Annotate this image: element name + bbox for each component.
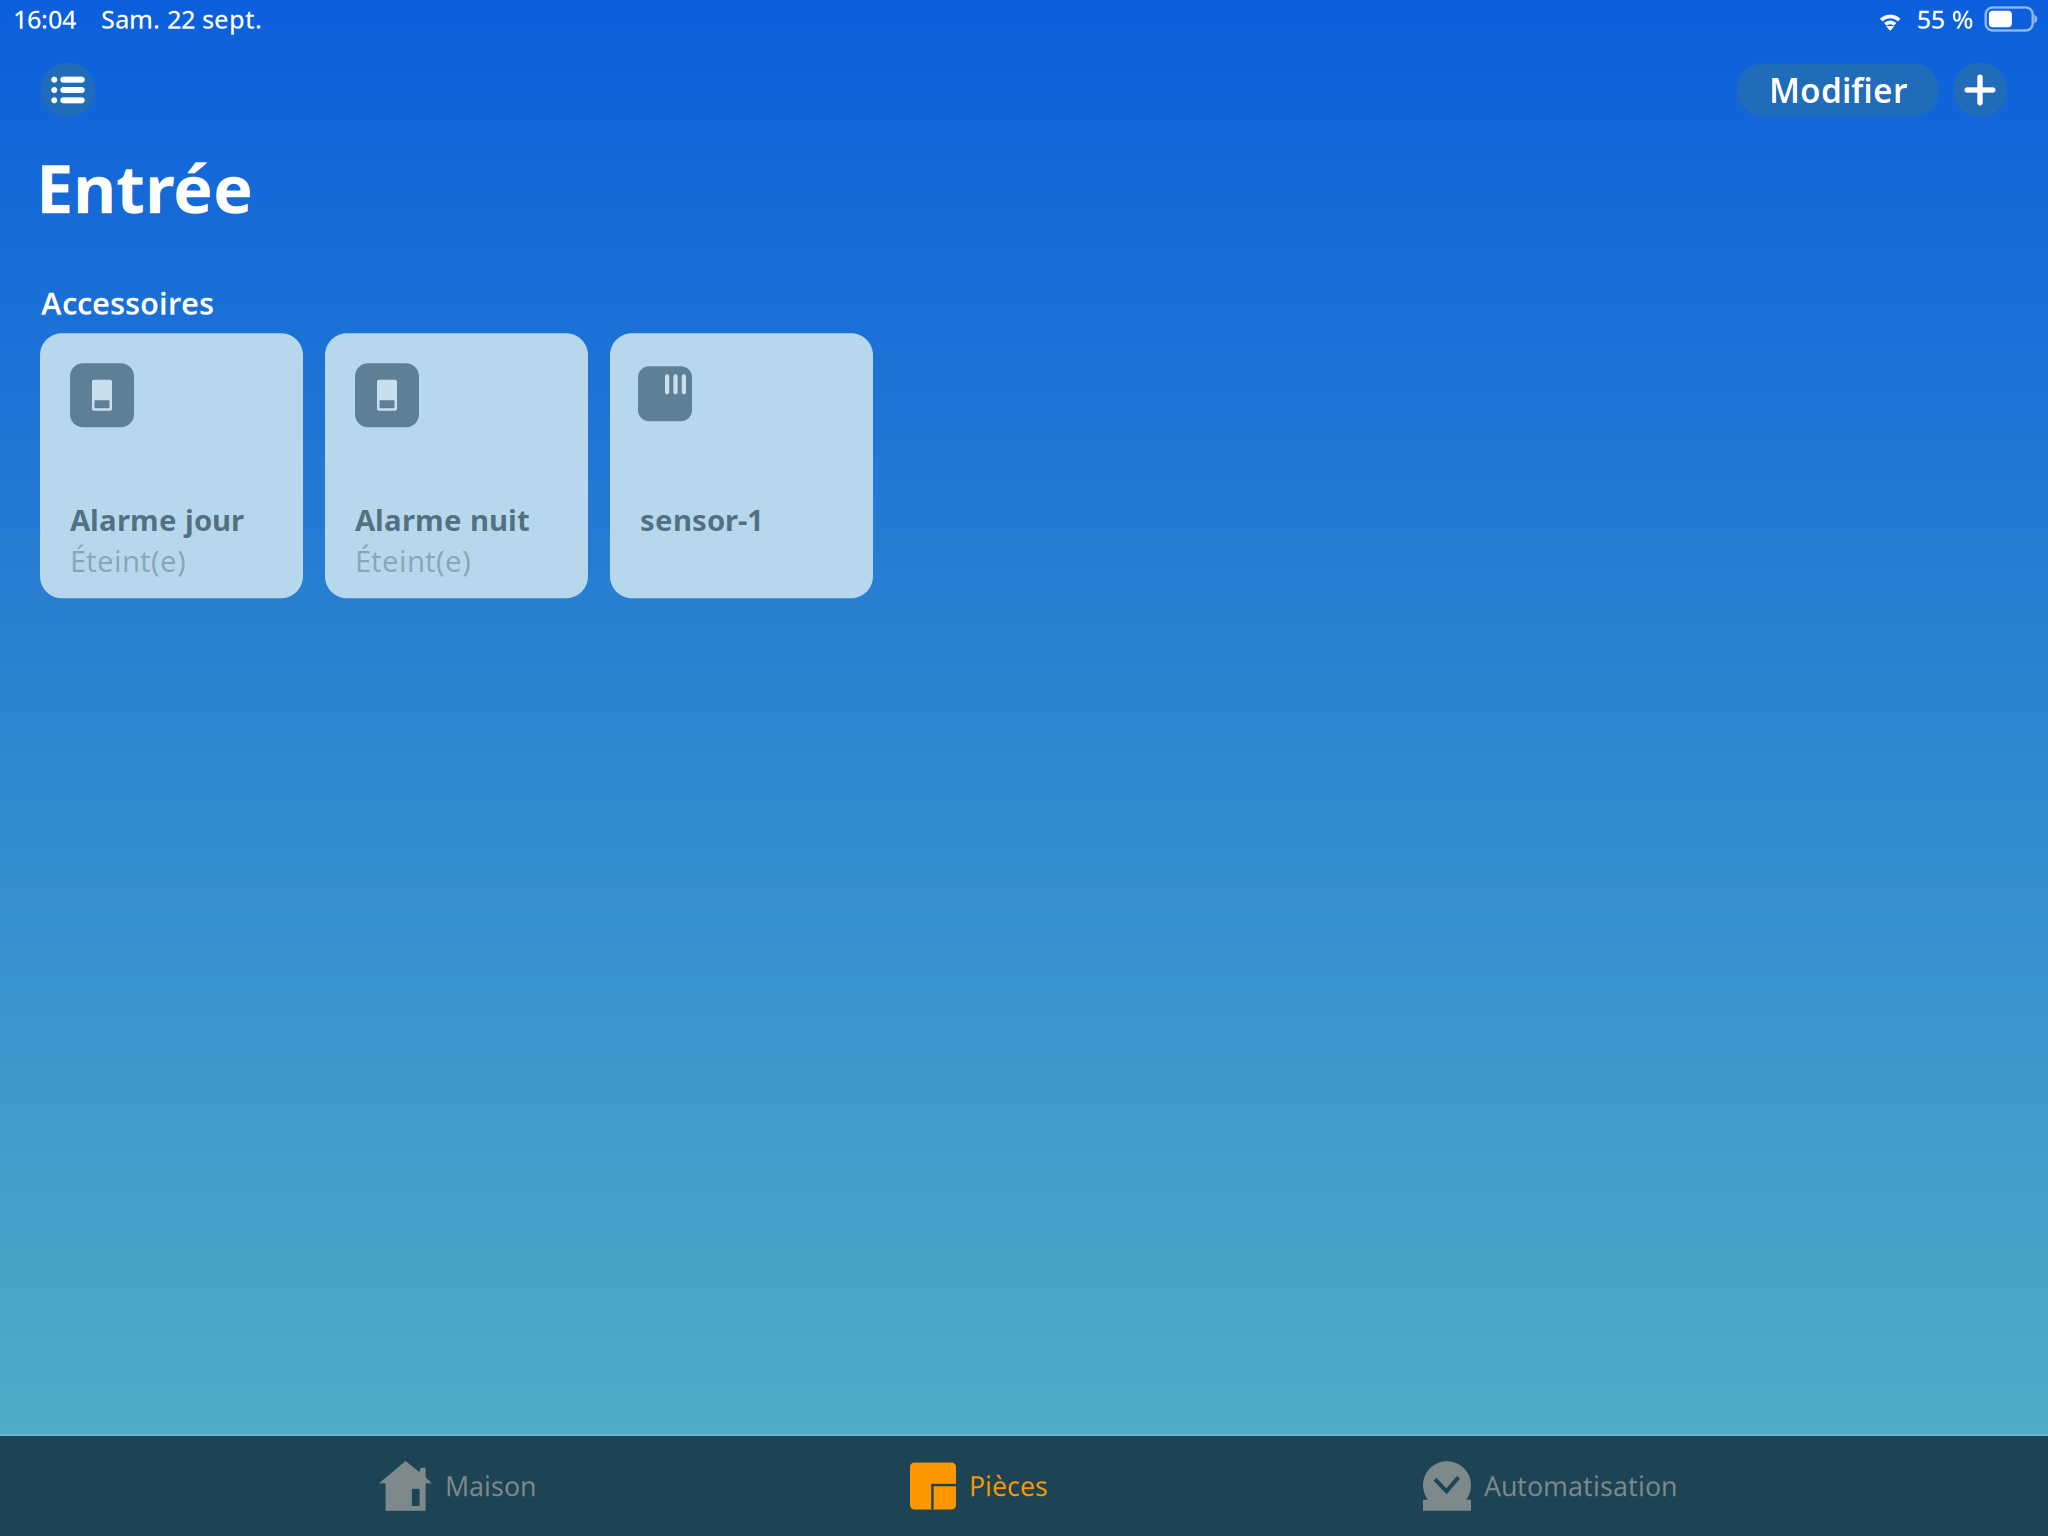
button[interactable]: sensor-1	[610, 333, 873, 598]
staticText: Éteint(e)	[355, 541, 471, 580]
button[interactable]: Ajouter	[1953, 63, 2007, 117]
button[interactable]: Alarme nuit	[325, 333, 588, 598]
button[interactable]: Pièces	[910, 1436, 1048, 1536]
button[interactable]: Modifier	[1737, 63, 1939, 116]
staticText: Accessoires	[41, 282, 214, 323]
staticText: Automatisation	[1484, 1468, 1677, 1504]
staticText: Alarme jour	[70, 500, 244, 539]
staticText: 16:04	[13, 2, 76, 36]
staticText: 55 %	[1917, 2, 1974, 36]
staticText: Sam. 22 sept.	[101, 2, 262, 36]
button[interactable]: Maison	[379, 1436, 536, 1536]
staticText: Maison	[445, 1468, 536, 1504]
staticText: Alarme nuit	[355, 500, 530, 539]
button[interactable]: Automatisation	[1423, 1436, 1677, 1536]
staticText: Entrée	[36, 143, 253, 231]
staticText: Pièces	[969, 1468, 1048, 1504]
staticText: Modifier	[1769, 68, 1907, 112]
button[interactable]: Alarme jour	[40, 333, 303, 598]
button[interactable]: Afficher la barre latérale	[41, 63, 95, 117]
staticText: Éteint(e)	[70, 541, 186, 580]
staticText: sensor-1	[640, 500, 764, 539]
